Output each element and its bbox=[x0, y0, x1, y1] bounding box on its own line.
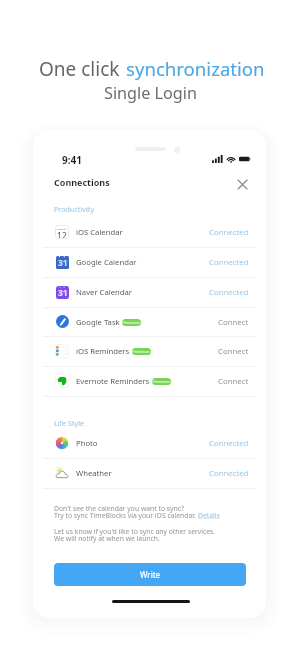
staticText: iOS Reminders bbox=[76, 346, 130, 356]
staticText: Wheather bbox=[76, 468, 112, 478]
staticText: Google Calendar bbox=[76, 257, 137, 267]
staticText: Google Task bbox=[76, 317, 120, 327]
staticText: Connect bbox=[218, 346, 249, 357]
staticText: 31 bbox=[58, 257, 68, 269]
staticText: Naver Calendar bbox=[76, 287, 133, 297]
staticText: Don't see the calendar you want to sync? bbox=[54, 504, 184, 513]
staticText: iOS Calendar bbox=[76, 227, 123, 237]
staticText: Single Login bbox=[104, 82, 197, 104]
staticText: One click bbox=[39, 56, 120, 82]
button[interactable]: Google Task bbox=[33, 307, 266, 337]
staticText: Connected bbox=[209, 468, 249, 479]
button[interactable]: Write bbox=[54, 563, 246, 586]
staticText: Connected bbox=[209, 257, 249, 268]
button[interactable]: iOS Reminders bbox=[33, 336, 266, 366]
staticText: Evernote Reminders bbox=[76, 376, 150, 386]
button[interactable]: Naver Calendar bbox=[33, 277, 266, 307]
staticText: Life Style bbox=[54, 418, 85, 428]
staticText: Connect bbox=[218, 376, 249, 387]
staticText: Connected bbox=[209, 287, 249, 298]
staticText: Premium bbox=[152, 379, 171, 385]
staticText: 9:41 bbox=[62, 153, 82, 167]
staticText: synchronization bbox=[126, 56, 265, 81]
button[interactable]: Close bbox=[232, 174, 252, 194]
staticText: 31 bbox=[58, 287, 68, 299]
staticText: Connected bbox=[209, 438, 249, 449]
button[interactable]: Connections bbox=[54, 176, 110, 188]
staticText: Premium bbox=[132, 349, 151, 355]
staticText: Connections bbox=[54, 176, 110, 188]
button[interactable]: Evernote Reminders bbox=[33, 366, 266, 396]
staticText: Connected bbox=[209, 227, 249, 238]
staticText: We will notify at when we launch. bbox=[54, 534, 160, 543]
staticText: Productivity bbox=[54, 204, 95, 214]
staticText: Details bbox=[198, 511, 220, 520]
button[interactable]: Wheather bbox=[33, 458, 266, 488]
button[interactable]: iOS Calendar bbox=[33, 217, 266, 247]
staticText: Write bbox=[140, 569, 161, 580]
staticText: 12 bbox=[57, 230, 67, 239]
button[interactable]: Details bbox=[198, 511, 220, 520]
staticText: Let us know if you'd like to sync any ot… bbox=[54, 527, 216, 536]
staticText: Premium bbox=[122, 320, 141, 326]
staticText: Tuesday bbox=[57, 227, 67, 230]
staticText: Try to sync TimeBlocks via your iOS cale… bbox=[54, 511, 196, 520]
button[interactable]: Google Calendar bbox=[33, 247, 266, 277]
staticText: Photo bbox=[76, 438, 98, 448]
staticText: Connect bbox=[218, 317, 249, 328]
button[interactable]: Photo bbox=[33, 428, 266, 458]
